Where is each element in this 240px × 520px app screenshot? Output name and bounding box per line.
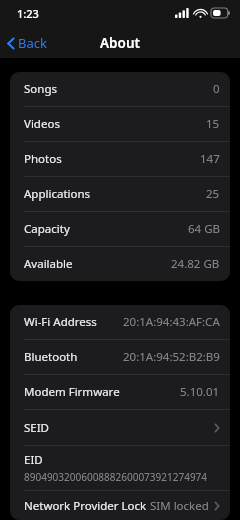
button[interactable]: Available: [10, 247, 230, 281]
staticText: Wi-Fi Address: [24, 314, 97, 330]
button[interactable]: Capacity: [10, 212, 230, 246]
staticText: Modem Firmware: [24, 384, 120, 400]
staticText: 147: [200, 151, 220, 167]
button[interactable]: Back: [0, 30, 55, 56]
staticText: 5.10.01: [180, 384, 220, 400]
button[interactable]: Modem Firmware: [10, 375, 230, 409]
staticText: 25: [206, 186, 220, 202]
staticText: 20:1A:94:52:B2:B9: [123, 349, 220, 365]
button[interactable]: Songs: [10, 72, 230, 106]
staticText: Bluetooth: [24, 349, 78, 365]
button[interactable]: EID: [10, 446, 230, 490]
staticText: Network Provider Lock: [24, 498, 147, 514]
staticText: 1:23: [17, 6, 39, 21]
button[interactable]: Wi-Fi Address: [10, 305, 230, 339]
staticText: Applications: [24, 186, 91, 202]
staticText: 64 GB: [188, 221, 220, 237]
staticText: Capacity: [24, 221, 70, 237]
staticText: About: [100, 34, 140, 52]
button[interactable]: Videos: [10, 107, 230, 141]
staticText: 24.82 GB: [171, 256, 220, 272]
staticText: 20:1A:94:43:AF:CA: [123, 314, 220, 330]
staticText: Photos: [24, 151, 62, 167]
staticText: Songs: [24, 81, 57, 97]
staticText: Available: [24, 256, 73, 272]
button[interactable]: SEID: [10, 410, 230, 445]
button[interactable]: Bluetooth: [10, 340, 230, 374]
staticText: EID: [24, 452, 43, 468]
button[interactable]: Network Provider Lock: [10, 491, 230, 520]
staticText: 15: [206, 116, 220, 132]
staticText: SEID: [24, 420, 50, 436]
button[interactable]: Applications: [10, 177, 230, 211]
staticText: 0: [213, 81, 220, 97]
staticText: 89049032006008882600073921274974: [24, 470, 208, 484]
staticText: Back: [18, 34, 47, 52]
staticText: SIM locked: [150, 498, 209, 514]
staticText: Videos: [24, 116, 60, 132]
button[interactable]: Photos: [10, 142, 230, 176]
